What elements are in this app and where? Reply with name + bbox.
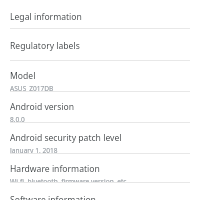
staticText: Legal information bbox=[10, 11, 82, 23]
button[interactable]: Legal information bbox=[0, 0, 200, 28]
button[interactable]: Model bbox=[0, 61, 200, 91]
staticText: Hardware information bbox=[10, 163, 100, 175]
staticText: Android security patch level bbox=[10, 132, 122, 144]
staticText: Model bbox=[10, 70, 36, 82]
staticText: 8.0.0 bbox=[10, 115, 25, 122]
staticText: Regulatory labels bbox=[10, 40, 80, 52]
button[interactable]: Android version bbox=[0, 92, 200, 122]
staticText: Wi-fi, bluetooth, firmware version, etc. bbox=[10, 177, 129, 182]
staticText: Software information bbox=[10, 194, 96, 200]
staticText: January 1, 2018 bbox=[10, 146, 58, 153]
button[interactable]: Hardware information bbox=[0, 154, 200, 182]
staticText: Android version bbox=[10, 101, 75, 113]
button[interactable]: Android security patch level bbox=[0, 123, 200, 153]
button[interactable]: Software information bbox=[0, 183, 200, 200]
staticText: ASUS_Z017DB bbox=[10, 84, 54, 91]
button[interactable]: Regulatory labels bbox=[0, 29, 200, 60]
